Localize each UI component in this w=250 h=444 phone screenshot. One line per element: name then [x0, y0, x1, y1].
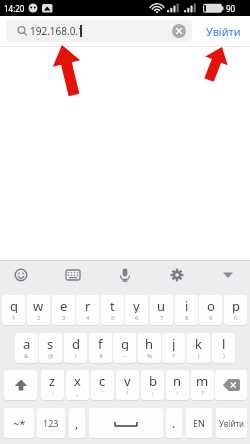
button[interactable]: [60, 262, 86, 288]
staticText: a: [23, 335, 31, 351]
staticText: x: [74, 372, 81, 388]
button[interactable]: [4, 370, 37, 400]
button[interactable]: s: [39, 333, 62, 363]
staticText: c: [99, 372, 106, 388]
staticText: r: [85, 297, 91, 313]
button[interactable]: k: [187, 333, 210, 363]
button[interactable]: [89, 408, 163, 438]
button[interactable]: EN: [186, 408, 212, 438]
staticText: 4: [86, 314, 90, 322]
button[interactable]: i: [175, 295, 198, 325]
staticText: e: [60, 297, 68, 313]
staticText: f: [98, 335, 103, 351]
button[interactable]: [8, 262, 34, 288]
button[interactable]: y: [125, 295, 148, 325]
staticText: %: [147, 352, 152, 360]
staticText: u: [157, 297, 166, 313]
staticText: /: [126, 389, 129, 397]
staticText: 8: [185, 314, 189, 322]
staticText: 90: [226, 3, 236, 14]
button[interactable]: j: [162, 333, 185, 363]
button[interactable]: [112, 262, 138, 288]
staticText: s: [47, 335, 54, 351]
staticText: o: [207, 297, 215, 313]
button[interactable]: m: [191, 370, 214, 400]
staticText: w: [33, 297, 44, 313]
staticText: y: [133, 297, 140, 313]
staticText: v: [124, 372, 131, 388]
staticText: i: [185, 297, 189, 313]
staticText: 5: [111, 314, 115, 322]
button[interactable]: x: [66, 370, 89, 400]
staticText: #: [99, 352, 103, 360]
staticText: m: [196, 372, 209, 388]
staticText: ?: [201, 389, 204, 397]
button[interactable]: .: [166, 408, 182, 438]
staticText: p: [232, 297, 240, 313]
staticText: 9: [209, 314, 213, 322]
button[interactable]: a: [15, 333, 38, 363]
button[interactable]: f: [89, 333, 112, 363]
button[interactable]: [164, 262, 190, 288]
button[interactable]: d: [64, 333, 87, 363]
staticText: b: [149, 372, 157, 388]
staticText: 14:20: [4, 3, 25, 14]
staticText: l: [222, 335, 226, 351]
button[interactable]: 123: [37, 408, 65, 438]
button[interactable]: g: [113, 333, 136, 363]
staticText: d: [72, 335, 80, 351]
button[interactable]: t: [101, 295, 124, 325]
button[interactable]: q: [2, 295, 25, 325]
staticText: ~*: [13, 416, 26, 431]
button[interactable]: e: [52, 295, 75, 325]
button[interactable]: 192.168.0.1: [6, 20, 192, 42]
staticText: 2: [37, 314, 41, 322]
staticText: j: [172, 335, 176, 351]
button[interactable]: v: [116, 370, 139, 400]
staticText: &: [24, 352, 29, 360]
staticText: ~: [123, 352, 127, 360]
staticText: !: [75, 352, 77, 360]
staticText: h: [145, 335, 154, 351]
button[interactable]: r: [76, 295, 99, 325]
staticText: ?: [172, 352, 175, 360]
staticText: ,: [75, 415, 79, 431]
staticText: !: [177, 389, 179, 397]
button[interactable]: o: [199, 295, 222, 325]
button[interactable]: p: [224, 295, 247, 325]
button[interactable]: n: [166, 370, 189, 400]
staticText: q: [10, 297, 18, 313]
staticText: -: [52, 389, 54, 397]
staticText: t: [110, 297, 115, 313]
staticText: k: [195, 335, 202, 351]
staticText: ': [102, 389, 104, 397]
button[interactable]: u: [150, 295, 173, 325]
staticText: 0: [234, 314, 238, 322]
button[interactable]: l: [212, 333, 235, 363]
button[interactable]: z: [41, 370, 64, 400]
staticText: g: [121, 335, 129, 351]
button[interactable]: ~*: [4, 408, 34, 438]
button[interactable]: h: [138, 333, 161, 363]
staticText: @: [48, 352, 54, 360]
button[interactable]: Увійти: [201, 16, 246, 46]
button[interactable]: c: [91, 370, 114, 400]
button[interactable]: Увійти: [216, 408, 247, 438]
button[interactable]: [215, 262, 241, 288]
staticText: 3: [62, 314, 66, 322]
staticText: (: [198, 352, 200, 360]
staticText: 7: [160, 314, 164, 322]
staticText: Увійти: [206, 24, 241, 39]
button[interactable]: w: [27, 295, 50, 325]
button[interactable]: ,: [69, 408, 85, 438]
staticText: .: [172, 415, 176, 431]
staticText: 192.168.0.1: [30, 24, 84, 38]
button[interactable]: [215, 370, 247, 400]
staticText: 1: [12, 314, 16, 322]
staticText: ): [223, 352, 225, 360]
staticText: n: [173, 372, 182, 388]
staticText: 6: [135, 314, 139, 322]
button[interactable]: b: [141, 370, 164, 400]
staticText: EN: [193, 417, 205, 429]
staticText: Увійти: [219, 418, 245, 429]
